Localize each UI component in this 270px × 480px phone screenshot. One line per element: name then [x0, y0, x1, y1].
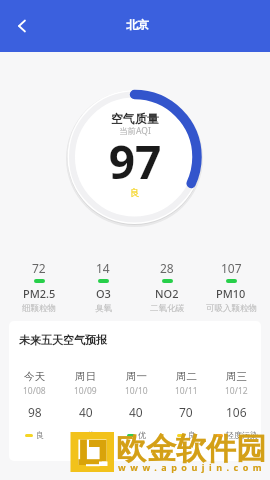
staticText: 10/10 [125, 385, 148, 397]
staticText: 良 [36, 430, 44, 440]
staticText: 北京 [126, 18, 149, 32]
staticText: 优 [138, 430, 146, 440]
staticText: 良 [0, 187, 270, 199]
button[interactable]: 14 [71, 260, 135, 314]
staticText: 空气质量 [0, 111, 270, 126]
button[interactable]: 周一 [111, 370, 161, 440]
staticText: 良 [188, 430, 196, 440]
staticText: 臭氧 [95, 303, 112, 314]
button[interactable]: 周二 [161, 370, 211, 440]
staticText: 10/08 [23, 385, 46, 397]
button[interactable]: 107 [199, 260, 263, 314]
staticText: 40 [129, 404, 143, 420]
staticText: 10/09 [74, 385, 97, 397]
staticText: 未来五天空气预报 [19, 333, 107, 347]
staticText: www.apoujin.com [118, 461, 267, 473]
staticText: 10/12 [225, 385, 248, 397]
staticText: 14 [96, 260, 110, 276]
staticText: 10/11 [175, 385, 198, 397]
staticText: 98 [28, 404, 42, 420]
staticText: O3 [96, 286, 111, 301]
staticText: 周三 [226, 370, 247, 383]
button[interactable]: 周三 [211, 370, 261, 440]
staticText: PM2.5 [23, 286, 56, 301]
staticText: 40 [79, 404, 93, 420]
staticText: 72 [32, 260, 46, 276]
staticText: 欧金软件园 [116, 430, 266, 468]
staticText: 今天 [24, 370, 45, 383]
staticText: 周一 [126, 370, 147, 383]
staticText: 28 [160, 260, 174, 276]
staticText: PM10 [216, 286, 246, 301]
staticText: 当前AQI [0, 125, 270, 137]
button[interactable]: 72 [7, 260, 71, 314]
staticText: NO2 [155, 286, 179, 301]
staticText: 97 [0, 130, 270, 193]
staticText: 70 [179, 404, 193, 420]
staticText: 二氧化碳 [150, 303, 184, 314]
staticText: 优 [87, 430, 95, 440]
staticText: 细颗粒物 [22, 303, 56, 314]
staticText: 轻度污染 [226, 430, 258, 440]
staticText: 周二 [176, 370, 197, 383]
staticText: 可吸入颗粒物 [206, 303, 257, 314]
button[interactable]: 今天 [9, 370, 60, 440]
button[interactable]: 28 [135, 260, 199, 314]
staticText: 107 [221, 260, 242, 276]
staticText: 周日 [75, 370, 96, 383]
button[interactable]: Back [8, 12, 36, 40]
button[interactable]: 周日 [60, 370, 111, 440]
staticText: 106 [226, 404, 247, 420]
